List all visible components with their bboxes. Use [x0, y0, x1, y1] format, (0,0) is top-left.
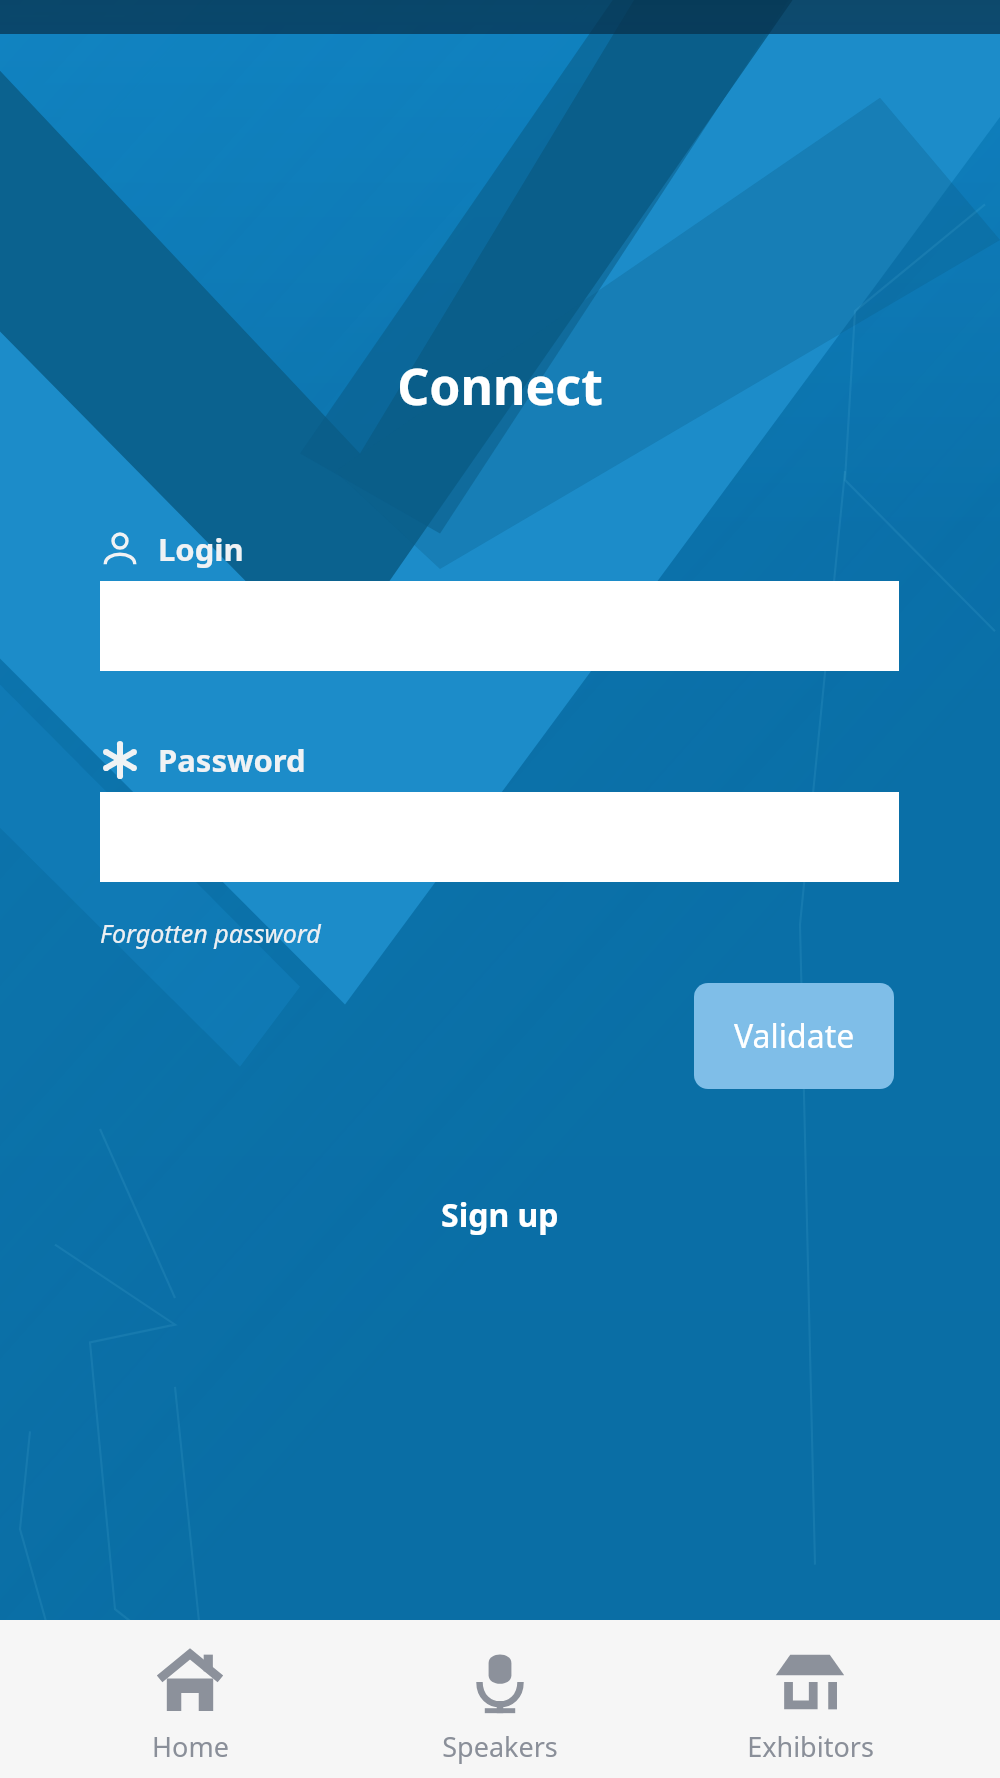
staticText: Forgotten password — [100, 916, 321, 950]
button[interactable]: Speakers — [380, 1636, 620, 1765]
button[interactable]: Sign up — [421, 1185, 579, 1245]
button[interactable]: Forgotten password — [100, 916, 321, 950]
button[interactable]: Validate — [694, 983, 894, 1089]
staticText: Connect — [0, 352, 1000, 420]
staticText: Exhibitors — [747, 1728, 874, 1765]
button[interactable]: Exhibitors — [690, 1636, 930, 1765]
staticText: Password — [158, 739, 306, 781]
staticText: Login — [158, 528, 244, 570]
staticText: Sign up — [441, 1193, 559, 1237]
staticText: Home — [152, 1728, 229, 1765]
staticText: Validate — [734, 1014, 855, 1058]
button[interactable]: Home — [70, 1636, 310, 1765]
staticText: Speakers — [442, 1728, 558, 1765]
